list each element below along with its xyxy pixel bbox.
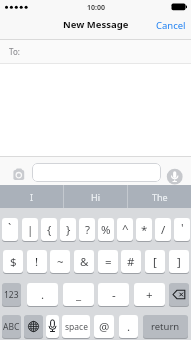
button[interactable] [169, 283, 189, 306]
staticText: ! [35, 254, 39, 270]
staticText: space [65, 321, 88, 333]
button[interactable] [32, 163, 161, 182]
staticText: } [66, 222, 71, 238]
button[interactable]: $ [3, 250, 23, 273]
button[interactable]: # [121, 250, 141, 273]
button[interactable]: = [98, 250, 118, 273]
staticText: ? [85, 222, 90, 238]
button[interactable]: ABC [2, 315, 21, 338]
button[interactable]: ] [169, 250, 189, 273]
staticText: / [161, 222, 166, 238]
button[interactable]: Hi [64, 185, 127, 208]
staticText: - [112, 287, 116, 303]
staticText: # [127, 254, 135, 270]
staticText: return [151, 320, 180, 333]
button[interactable]: { [41, 218, 57, 241]
staticText: . [41, 287, 45, 303]
button[interactable]: ` [2, 218, 18, 241]
button[interactable]: & [74, 250, 94, 273]
button[interactable]: space [62, 315, 90, 338]
button[interactable]: . [27, 283, 58, 306]
staticText: + [146, 287, 153, 303]
button[interactable]: - [98, 283, 129, 306]
staticText: ~ [57, 254, 64, 270]
button[interactable]: } [60, 218, 76, 241]
button[interactable] [11, 167, 27, 182]
button[interactable]: ~ [50, 250, 70, 273]
button[interactable] [24, 315, 43, 338]
staticText: [ [153, 254, 157, 270]
staticText: _ [76, 287, 82, 303]
staticText: & [80, 254, 89, 270]
staticText: ` [8, 220, 12, 236]
button[interactable]: The [128, 185, 191, 208]
staticText: % [101, 222, 111, 238]
button[interactable]: ! [27, 250, 47, 273]
staticText: 123 [4, 289, 19, 301]
staticText: $ [10, 254, 17, 270]
staticText: @ [99, 319, 110, 335]
staticText: I [30, 191, 34, 203]
button[interactable]: * [136, 218, 152, 241]
button[interactable]: @ [94, 315, 114, 338]
button[interactable] [46, 315, 59, 338]
staticText: Hi [91, 191, 100, 203]
button[interactable]: ^ [117, 218, 133, 241]
button[interactable]: 123 [2, 283, 21, 306]
button[interactable]: ? [79, 218, 95, 241]
staticText: ' [181, 220, 184, 236]
staticText: Cancel [156, 19, 186, 32]
staticText: The [152, 191, 168, 203]
staticText: | [27, 222, 34, 238]
button[interactable]: To: [0, 40, 191, 63]
staticText: ABC [3, 321, 20, 333]
button[interactable]: I [0, 185, 63, 208]
button[interactable]: % [98, 218, 114, 241]
staticText: . [127, 319, 131, 335]
staticText: To: [9, 46, 20, 57]
staticText: New Message [63, 18, 129, 31]
button[interactable]: Cancel [156, 14, 186, 37]
button[interactable]: [ [145, 250, 165, 273]
button[interactable]: + [134, 283, 165, 306]
staticText: = [105, 254, 112, 270]
button[interactable]: _ [63, 283, 94, 306]
staticText: ^ [122, 221, 129, 237]
button[interactable]: return [143, 315, 188, 338]
button[interactable]: . [119, 315, 138, 338]
button[interactable] [166, 168, 183, 185]
button[interactable]: / [155, 218, 171, 241]
button[interactable]: | [22, 218, 38, 241]
staticText: { [47, 222, 52, 238]
staticText: * [141, 222, 148, 238]
staticText: ] [177, 254, 181, 270]
staticText: 10:00 [87, 3, 105, 13]
button[interactable]: ' [174, 218, 190, 241]
